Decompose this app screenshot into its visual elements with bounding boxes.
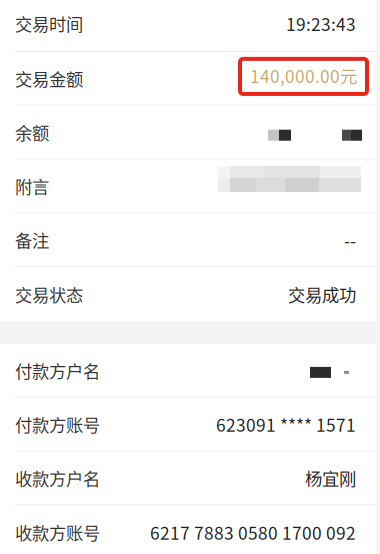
button[interactable]: 附言 [0, 160, 376, 213]
staticText: -- [344, 227, 356, 252]
button[interactable]: 交易时间 [0, 0, 376, 52]
staticText: 收款方户名 [15, 465, 100, 491]
staticText: 附言 [15, 173, 49, 199]
staticText: 付款方户名 [15, 358, 100, 383]
button[interactable]: 收款方账号 [0, 505, 376, 554]
staticText: 140,000.00元 [250, 63, 357, 88]
staticText: 交易成功 [288, 282, 356, 307]
button[interactable]: 交易状态 [0, 267, 376, 321]
staticText: 19:23:43 [286, 11, 356, 36]
staticText: 交易金额 [15, 66, 83, 91]
staticText: 收款方账号 [15, 520, 100, 545]
staticText: 623091 **** 1571 [216, 412, 356, 437]
staticText: 余额 [15, 120, 49, 145]
staticText: 备注 [15, 227, 49, 252]
staticText: 交易时间 [15, 11, 83, 36]
button[interactable]: 交易金额 [0, 52, 376, 106]
button[interactable]: 付款方户名 [0, 344, 376, 398]
staticText: 交易状态 [15, 282, 83, 307]
staticText: 杨宜刚 [305, 465, 356, 491]
button[interactable]: 收款方户名 [0, 452, 376, 505]
staticText: 6217 7883 0580 1700 092 [150, 520, 356, 545]
button[interactable]: 备注 [0, 213, 376, 267]
button[interactable]: 余额 [0, 106, 376, 160]
staticText: 付款方账号 [15, 412, 100, 437]
button[interactable]: 付款方账号 [0, 398, 376, 452]
